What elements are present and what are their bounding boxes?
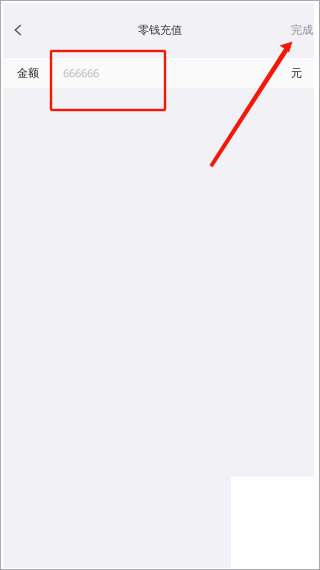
button[interactable]: 金额 bbox=[0, 58, 320, 88]
button[interactable]: Back bbox=[6, 15, 30, 45]
staticText: 零钱充值 bbox=[138, 23, 182, 37]
staticText: 金额 bbox=[17, 66, 39, 80]
staticText: 元 bbox=[291, 66, 302, 80]
staticText: 666666 bbox=[63, 65, 99, 81]
button[interactable]: 完成 bbox=[291, 15, 320, 45]
staticText: 完成 bbox=[291, 23, 313, 37]
